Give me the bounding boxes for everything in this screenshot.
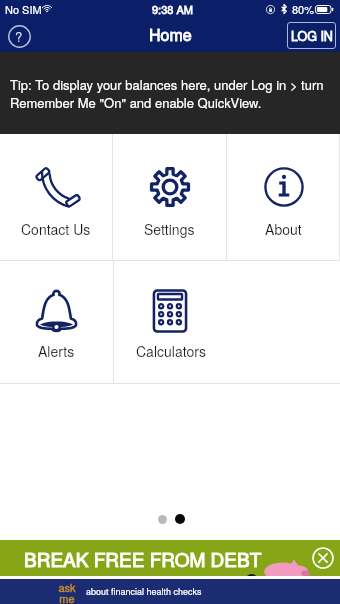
staticText: ask me <box>58 579 76 604</box>
staticText: Calculators <box>136 341 206 361</box>
staticText: BREAK FREE FROM DEBT <box>24 545 262 572</box>
button[interactable]: LOG IN <box>287 22 336 49</box>
button[interactable]: Settings <box>113 134 226 260</box>
button[interactable]: Alerts <box>0 261 113 383</box>
staticText: Tip: To display your balances here, unde… <box>10 75 324 94</box>
staticText: About <box>265 219 302 239</box>
staticText: ? <box>15 27 23 46</box>
button[interactable]: Help <box>5 22 33 50</box>
button[interactable]: Close ad <box>312 547 334 569</box>
staticText: Home <box>149 23 192 46</box>
button[interactable]: Calculators <box>114 261 227 383</box>
staticText: LOG IN <box>291 27 333 45</box>
button[interactable]: Page 2 <box>175 514 185 524</box>
staticText: Alerts <box>38 341 75 361</box>
staticText: about financial health checks <box>86 585 202 598</box>
staticText: 9:38 AM <box>152 1 193 17</box>
staticText: Remember Me "On" and enable QuickView. <box>10 93 262 112</box>
button[interactable]: Page 1 <box>158 515 167 524</box>
button[interactable]: About <box>227 134 340 260</box>
button[interactable]: Contact Us <box>0 134 112 260</box>
staticText: No SIM <box>5 1 42 17</box>
staticText: Settings <box>144 219 195 239</box>
staticText: Contact Us <box>21 219 91 239</box>
staticText: 80% <box>292 1 315 17</box>
